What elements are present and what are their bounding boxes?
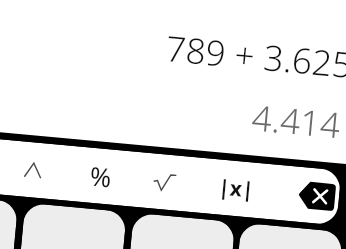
staticText: |x| (217, 172, 256, 205)
button[interactable]: ( ) (0, 193, 18, 249)
button[interactable] (232, 223, 343, 249)
button[interactable] (16, 203, 127, 249)
staticText: 789 + 3.625 (164, 24, 346, 89)
button[interactable] (125, 213, 235, 249)
staticText: % (88, 158, 113, 195)
button[interactable]: power (3, 140, 64, 200)
button[interactable]: square root (134, 152, 195, 212)
button[interactable]: backspace (286, 166, 346, 226)
staticText: 4.414 (250, 93, 343, 149)
button[interactable]: absolute value (206, 159, 267, 218)
button[interactable]: percent (70, 146, 131, 206)
